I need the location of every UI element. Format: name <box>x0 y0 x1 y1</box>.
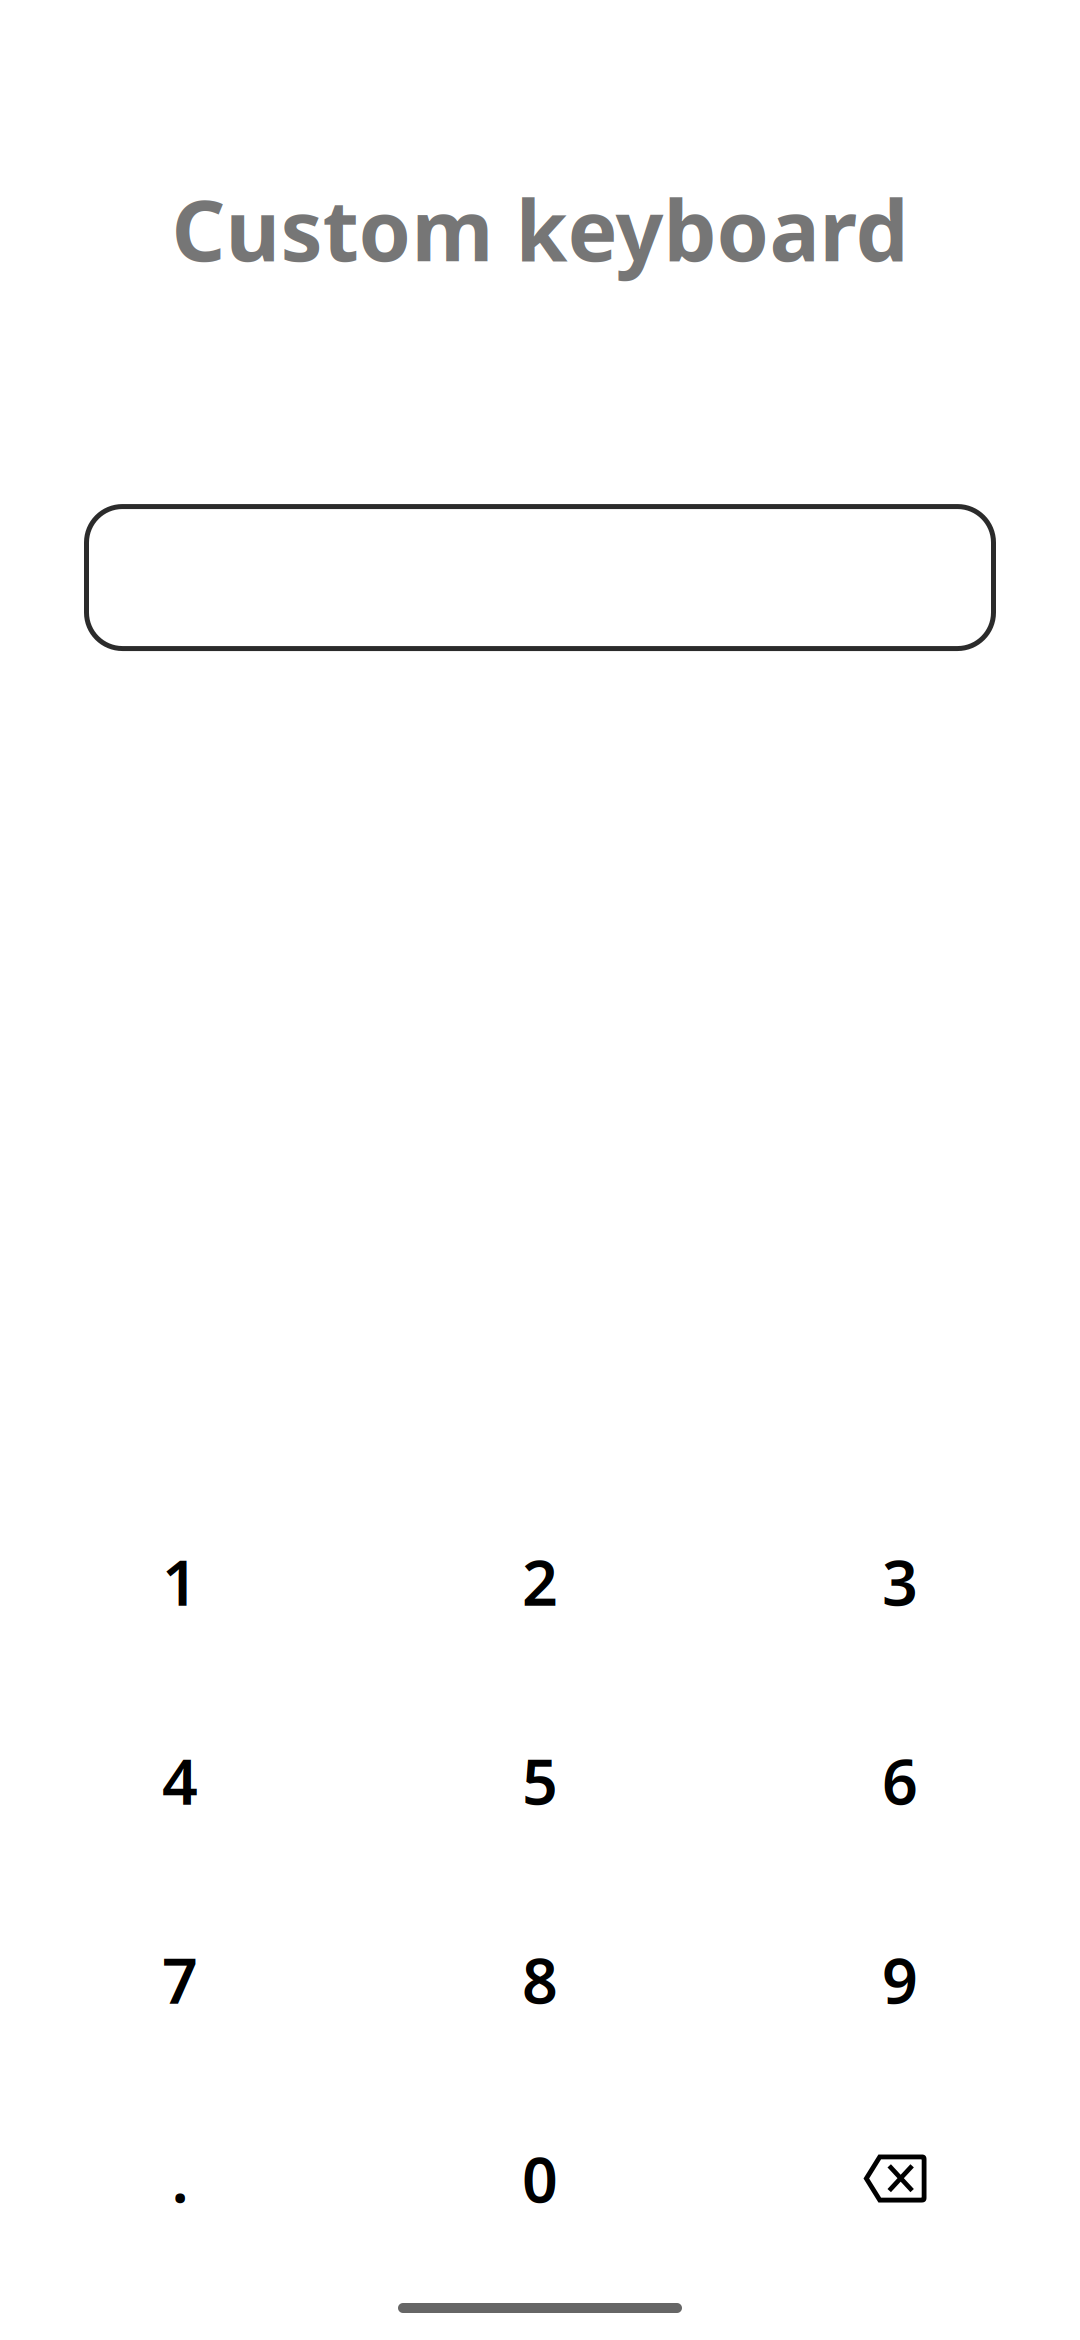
staticText: 3 <box>882 1540 918 1623</box>
button[interactable]: 3 <box>720 1482 1080 1681</box>
button[interactable]: 1 <box>0 1482 360 1681</box>
button[interactable]: 7 <box>0 1880 360 2079</box>
staticText: 6 <box>882 1739 918 1822</box>
staticText: Custom keyboard <box>171 173 908 284</box>
staticText: 7 <box>162 1938 198 2021</box>
button[interactable]: 5 <box>360 1681 720 1880</box>
staticText: 8 <box>522 1938 558 2021</box>
button[interactable]: 8 <box>360 1880 720 2079</box>
staticText: 5 <box>522 1739 558 1822</box>
staticText: 9 <box>882 1938 918 2021</box>
button[interactable]: . <box>0 2079 360 2278</box>
staticText: 1 <box>162 1540 198 1623</box>
staticText: . <box>171 2137 188 2220</box>
button[interactable]: 9 <box>720 1880 1080 2079</box>
staticText: 2 <box>522 1540 558 1623</box>
button[interactable]: 6 <box>720 1681 1080 1880</box>
staticText: 4 <box>162 1739 198 1822</box>
button[interactable]: Delete <box>720 2079 1080 2278</box>
button[interactable]: 0 <box>360 2079 720 2278</box>
staticText: 0 <box>522 2137 558 2220</box>
button[interactable]: 2 <box>360 1482 720 1681</box>
button[interactable]: 4 <box>0 1681 360 1880</box>
